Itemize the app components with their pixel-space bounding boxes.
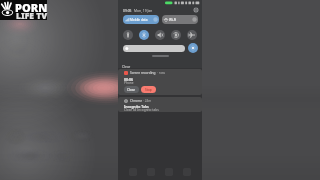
staticText: 00:06 (124, 77, 133, 82)
staticText: Incognito Tabs (124, 104, 149, 109)
staticText: 09:05 (123, 8, 132, 12)
staticText: Wi-Fi (169, 18, 177, 22)
button[interactable]: Auto brightness (188, 43, 198, 53)
button[interactable]: Flashlight (123, 30, 133, 40)
button[interactable]: Screen recording notification (118, 69, 202, 95)
button[interactable]: Chrome notification (118, 97, 202, 112)
button[interactable]: Airplane mode (187, 30, 197, 40)
button[interactable]: Do not disturb (155, 30, 165, 40)
staticText: Phone (124, 81, 134, 85)
staticText: PORN (15, 0, 48, 15)
button[interactable]: Close (124, 86, 139, 93)
staticText: · now (157, 71, 166, 75)
staticText: Clear (122, 64, 131, 69)
button[interactable]: Brightness (123, 45, 185, 52)
button[interactable]: Mobile data (123, 15, 159, 24)
staticText: · 24m (143, 99, 152, 103)
staticText: Stop (145, 88, 152, 92)
staticText: LIFE TV (16, 10, 48, 22)
staticText: Screen recording (130, 71, 156, 75)
staticText: Mon, 19 Jan (134, 8, 153, 12)
button[interactable]: Wi-Fi (162, 15, 198, 24)
staticText: Close all Incognito tabs (124, 108, 159, 112)
staticText: Mobile data (130, 18, 148, 22)
button[interactable]: Settings (193, 7, 199, 13)
button[interactable]: Auto rotate (171, 30, 181, 40)
staticText: Chrome (130, 99, 142, 103)
button[interactable]: Stop (141, 86, 156, 93)
staticText: Close (127, 88, 136, 92)
button[interactable]: Bluetooth (139, 30, 149, 40)
